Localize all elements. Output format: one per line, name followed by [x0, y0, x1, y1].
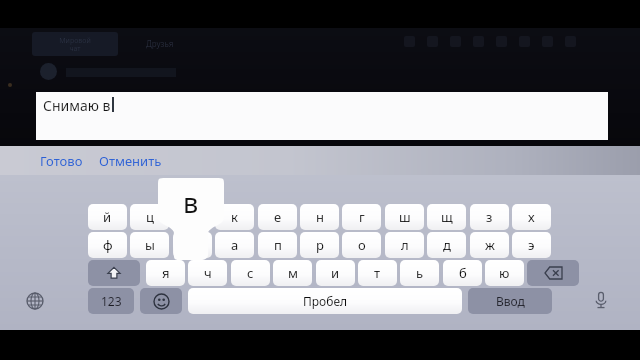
- staticText: н: [316, 208, 324, 226]
- button[interactable]: ж: [470, 232, 509, 258]
- button[interactable]: 123: [88, 288, 134, 314]
- button[interactable]: я: [146, 260, 185, 286]
- staticText: б: [459, 264, 467, 282]
- button[interactable]: ю: [485, 260, 524, 286]
- staticText: д: [443, 236, 451, 254]
- button[interactable]: щ: [427, 204, 466, 230]
- staticText: ю: [499, 264, 510, 282]
- button[interactable]: Пробел: [188, 288, 462, 314]
- button[interactable]: л: [385, 232, 424, 258]
- button[interactable]: и: [316, 260, 355, 286]
- button[interactable]: Снимаю в: [36, 92, 608, 140]
- button[interactable]: з: [470, 204, 509, 230]
- button[interactable]: й: [88, 204, 127, 230]
- button[interactable]: о: [342, 232, 381, 258]
- staticText: п: [274, 236, 282, 254]
- staticText: о: [358, 236, 366, 254]
- button[interactable]: ь: [400, 260, 439, 286]
- button[interactable]: Готово: [36, 147, 87, 175]
- staticText: ф: [103, 236, 113, 254]
- button[interactable]: х: [512, 204, 551, 230]
- button[interactable]: б: [443, 260, 482, 286]
- button[interactable]: Backspace: [527, 260, 579, 286]
- staticText: ч: [204, 264, 212, 282]
- button[interactable]: д: [427, 232, 466, 258]
- button[interactable]: п: [258, 232, 297, 258]
- staticText: ж: [485, 236, 495, 254]
- staticText: Снимаю в: [43, 96, 111, 115]
- staticText: Друзья: [146, 38, 174, 49]
- staticText: ь: [416, 264, 424, 282]
- button[interactable]: Мировой чат: [32, 32, 118, 56]
- button[interactable]: у: [173, 204, 212, 230]
- staticText: 123: [101, 293, 122, 309]
- button[interactable]: г: [342, 204, 381, 230]
- staticText: щ: [441, 208, 453, 226]
- staticText: Пробел: [303, 293, 348, 309]
- staticText: ц: [146, 208, 154, 226]
- staticText: л: [401, 236, 409, 254]
- button[interactable]: Отменить: [95, 147, 166, 175]
- staticText: й: [103, 208, 112, 226]
- staticText: Ввод: [496, 293, 525, 309]
- button[interactable]: н: [300, 204, 339, 230]
- button[interactable]: Emoji: [140, 288, 182, 314]
- staticText: з: [486, 208, 493, 226]
- button[interactable]: Voice input: [588, 287, 614, 313]
- staticText: в: [183, 184, 199, 221]
- button[interactable]: ф: [88, 232, 127, 258]
- button[interactable]: т: [358, 260, 397, 286]
- staticText: э: [528, 236, 535, 254]
- staticText: у: [189, 208, 196, 226]
- button[interactable]: м: [273, 260, 312, 286]
- button[interactable]: ч: [188, 260, 227, 286]
- button[interactable]: а: [215, 232, 254, 258]
- staticText: т: [374, 264, 381, 282]
- button[interactable]: р: [300, 232, 339, 258]
- staticText: м: [288, 264, 298, 282]
- staticText: с: [247, 264, 254, 282]
- button[interactable]: э: [512, 232, 551, 258]
- button[interactable]: Change keyboard language: [22, 288, 48, 314]
- staticText: а: [231, 236, 239, 254]
- staticText: х: [528, 208, 535, 226]
- staticText: к: [231, 208, 238, 226]
- button[interactable]: в: [173, 232, 212, 258]
- button[interactable]: Shift: [88, 260, 140, 286]
- staticText: Готово: [40, 152, 83, 170]
- staticText: г: [359, 208, 365, 226]
- button[interactable]: к: [215, 204, 254, 230]
- staticText: е: [274, 208, 282, 226]
- staticText: ы: [145, 236, 155, 254]
- staticText: я: [162, 264, 170, 282]
- staticText: Мировой чат: [59, 36, 91, 53]
- button[interactable]: ы: [130, 232, 169, 258]
- button[interactable]: ц: [130, 204, 169, 230]
- staticText: Отменить: [99, 152, 162, 170]
- button[interactable]: Друзья: [146, 38, 174, 49]
- button[interactable]: с: [231, 260, 270, 286]
- button[interactable]: е: [258, 204, 297, 230]
- staticText: ш: [399, 208, 411, 226]
- staticText: р: [316, 236, 324, 254]
- button[interactable]: Ввод: [468, 288, 552, 314]
- button[interactable]: ш: [385, 204, 424, 230]
- staticText: и: [331, 264, 340, 282]
